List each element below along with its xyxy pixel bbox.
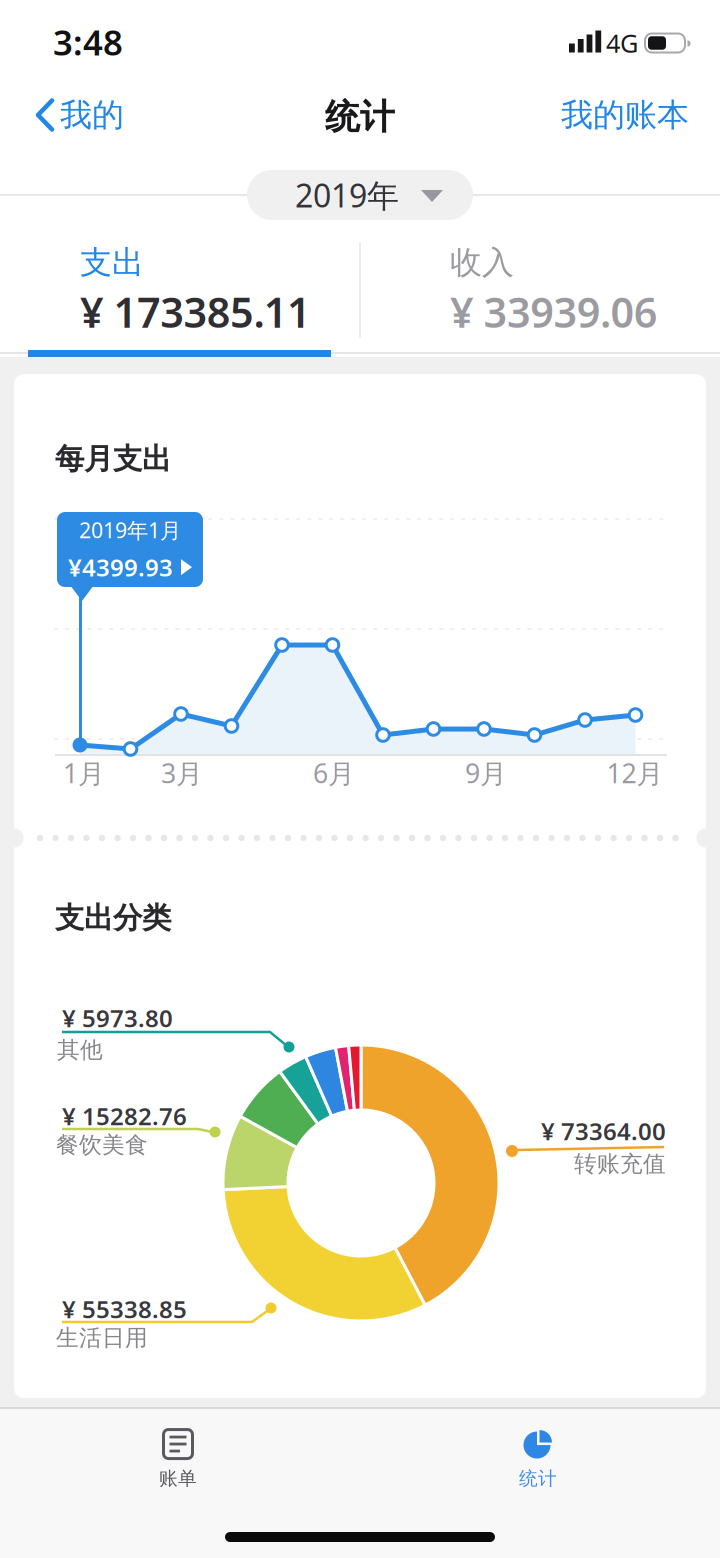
staticText: 1月 — [63, 755, 105, 791]
staticText: 2019年 — [295, 174, 399, 216]
staticText: 2019年1月 — [79, 516, 181, 544]
staticText: 餐饮美食 — [56, 1131, 148, 1159]
button[interactable]: 我的账本 — [561, 95, 689, 135]
staticText: 12月 — [606, 755, 663, 791]
staticText: ¥4399.93 — [68, 551, 173, 583]
staticText: ¥ 173385.11 — [80, 284, 311, 339]
staticText: 我的 — [60, 95, 124, 135]
button[interactable]: 统计 — [519, 1428, 557, 1490]
staticText: 生活日用 — [56, 1324, 148, 1352]
staticText: ¥ 55338.85 — [62, 1293, 187, 1325]
staticText: 收入 — [450, 243, 514, 282]
button[interactable]: 2019年 — [247, 170, 473, 220]
staticText: ¥ 33939.06 — [450, 284, 658, 339]
staticText: 其他 — [57, 1036, 103, 1064]
staticText: 3:48 — [53, 19, 123, 65]
staticText: 3月 — [161, 755, 203, 791]
staticText: 6月 — [313, 755, 355, 791]
staticText: 4G — [606, 26, 638, 60]
staticText: 9月 — [465, 755, 507, 791]
staticText: 统计 — [519, 1467, 557, 1490]
staticText: 支出分类 — [55, 900, 171, 936]
staticText: 支出 — [80, 243, 144, 282]
button[interactable]: 支出 — [80, 243, 350, 339]
staticText: 每月支出 — [55, 441, 171, 477]
staticText: 统计 — [325, 96, 395, 138]
button[interactable]: 我的 — [36, 95, 124, 135]
button[interactable]: 收入 — [450, 243, 720, 339]
staticText: ¥ 5973.80 — [62, 1002, 173, 1034]
staticText: 账单 — [159, 1467, 197, 1490]
staticText: ¥ 15282.76 — [62, 1100, 187, 1132]
button[interactable]: 2019年1月 — [57, 512, 203, 587]
staticText: 我的账本 — [561, 95, 689, 135]
staticText: ¥ 73364.00 — [541, 1115, 666, 1147]
button[interactable]: 账单 — [159, 1428, 197, 1490]
staticText: 转账充值 — [574, 1150, 666, 1178]
